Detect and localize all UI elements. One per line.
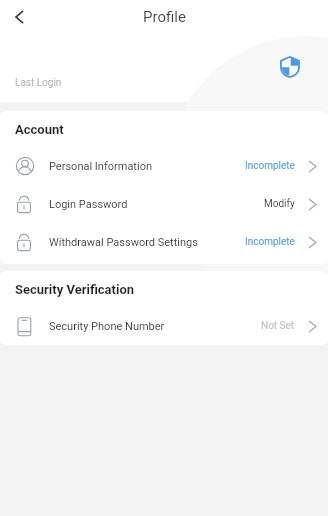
staticText: Personal Information: [49, 160, 152, 173]
button[interactable]: Withdrawal Password Settings: [0, 223, 328, 261]
staticText: Security Verification: [15, 282, 135, 297]
staticText: Not Set: [261, 320, 295, 332]
button[interactable]: Security Phone Number: [0, 307, 328, 345]
staticText: Profile: [143, 8, 186, 26]
staticText: Incomplete: [245, 236, 295, 248]
staticText: Modify: [264, 198, 295, 210]
staticText: Incomplete: [245, 160, 295, 172]
staticText: Security Phone Number: [49, 320, 165, 333]
staticText: Login Password: [49, 198, 128, 211]
staticText: Last Login: [15, 77, 62, 89]
button[interactable]: Back: [3, 1, 35, 33]
staticText: Withdrawal Password Settings: [49, 236, 198, 249]
staticText: Account: [15, 122, 64, 137]
button[interactable]: Login Password: [0, 185, 328, 223]
button[interactable]: Personal Information: [0, 147, 328, 185]
